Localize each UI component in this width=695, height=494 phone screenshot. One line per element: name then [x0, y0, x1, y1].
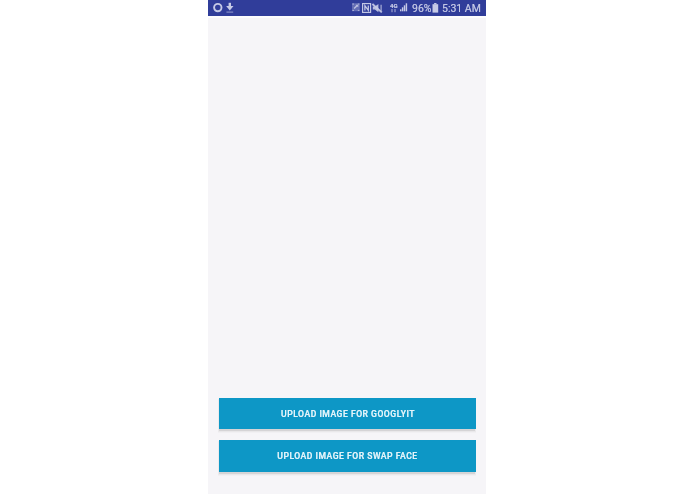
staticText: 5:31 AM: [442, 2, 481, 14]
staticText: UPLOAD IMAGE FOR SWAP FACE: [277, 451, 418, 461]
other: Recording: [212, 2, 224, 14]
button[interactable]: UPLOAD IMAGE FOR GOOGLYIT: [219, 398, 476, 429]
button[interactable]: UPLOAD IMAGE FOR SWAP FACE: [219, 440, 476, 472]
other: Downloading: [224, 2, 236, 14]
staticText: 96%: [412, 2, 432, 14]
staticText: 4G: [390, 2, 398, 9]
staticText: UPLOAD IMAGE FOR GOOGLYIT: [281, 409, 415, 419]
